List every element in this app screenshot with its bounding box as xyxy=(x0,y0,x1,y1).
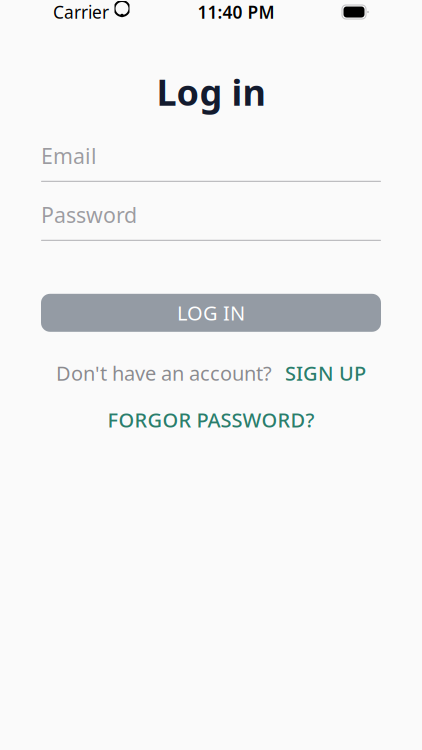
staticText: FORGOR PASSWORD? xyxy=(107,406,314,433)
button[interactable]: SIGN UP xyxy=(285,360,366,386)
staticText: Log in xyxy=(156,68,265,116)
staticText: Carrier xyxy=(53,0,109,23)
button[interactable]: FORGOR PASSWORD? xyxy=(107,406,314,433)
staticText: LOG IN xyxy=(177,299,245,326)
staticText: Email xyxy=(41,142,97,170)
staticText: Password xyxy=(41,201,137,229)
button[interactable]: LOG IN xyxy=(41,294,381,332)
staticText: 11:40 PM xyxy=(197,0,274,23)
staticText: Don't have an account? xyxy=(56,360,272,386)
staticText: SIGN UP xyxy=(285,360,366,386)
